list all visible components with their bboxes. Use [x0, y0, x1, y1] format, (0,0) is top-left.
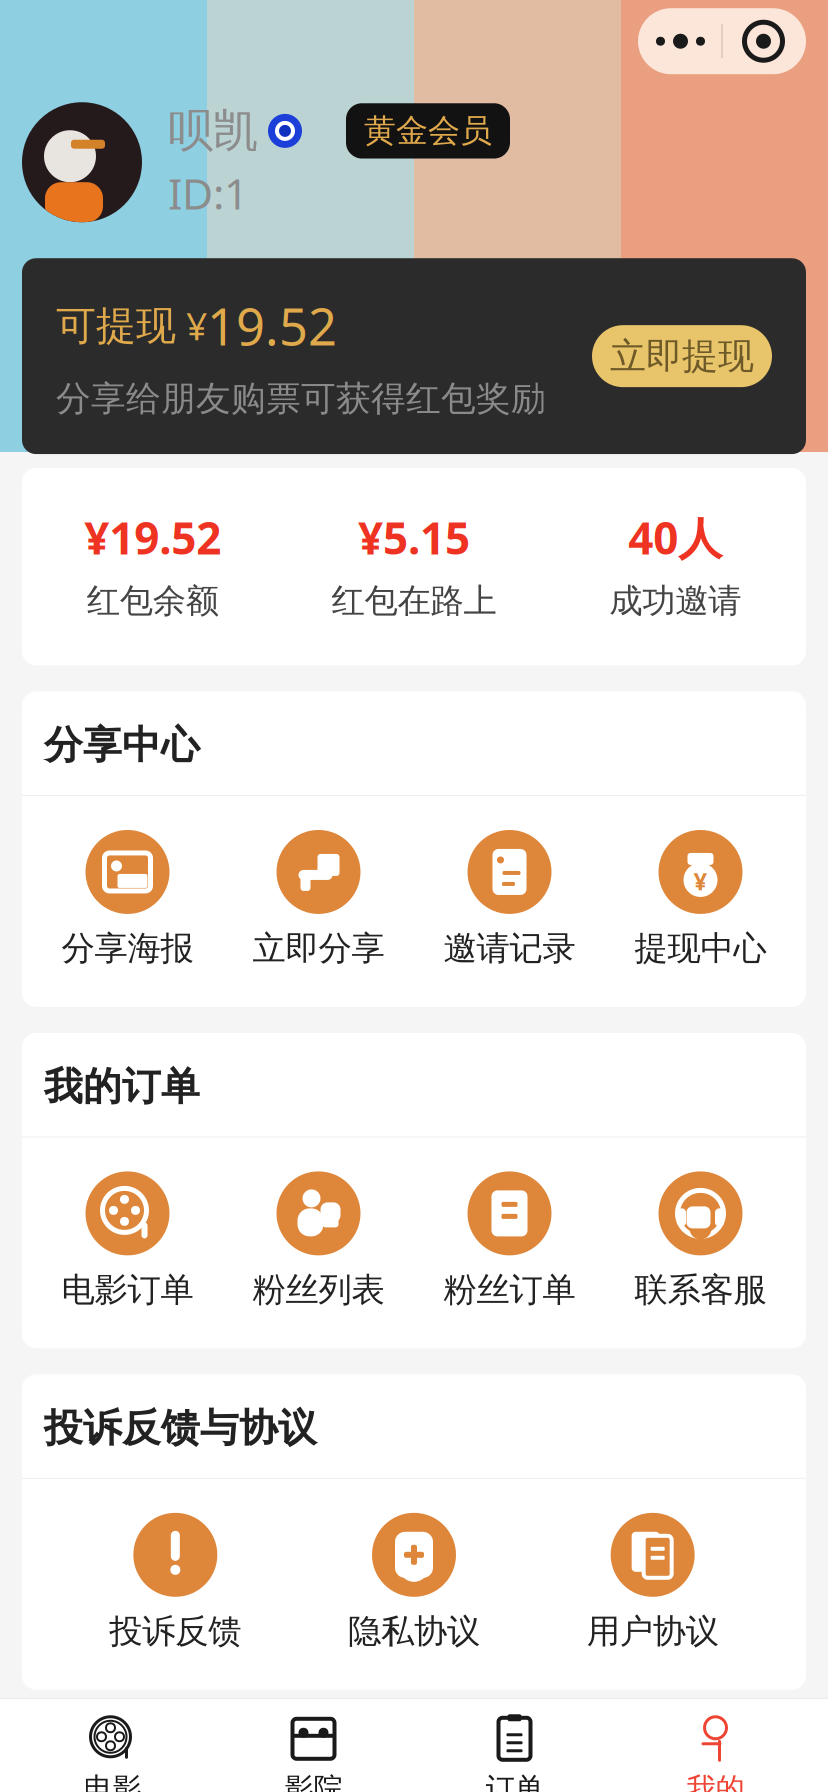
staticText: ID:1 — [168, 165, 248, 221]
staticText: 提现中心 — [634, 928, 766, 969]
staticText: 电影 — [83, 1771, 141, 1792]
button[interactable]: 联系客服 — [605, 1167, 796, 1314]
staticText: 可提现 — [56, 301, 176, 350]
button[interactable]: 订单 — [414, 1709, 615, 1792]
button[interactable]: 影院 — [213, 1709, 414, 1792]
staticText: 立即提现 — [610, 334, 754, 378]
staticText: ¥5.15 — [358, 508, 470, 566]
button[interactable]: More options — [638, 8, 806, 74]
staticText: 红包在路上 — [331, 580, 496, 621]
staticText: 用户协议 — [587, 1611, 719, 1652]
button[interactable]: 立即提现 — [592, 325, 772, 387]
button[interactable]: 隐私协议 — [295, 1509, 533, 1656]
staticText: 粉丝列表 — [252, 1269, 384, 1310]
button[interactable]: 电影订单 — [32, 1167, 223, 1314]
staticText: 分享给朋友购票可获得红包奖励 — [56, 377, 546, 420]
button[interactable]: 投诉反馈 — [56, 1509, 295, 1656]
staticText: 订单 — [485, 1771, 543, 1792]
staticText: 我的订单 — [44, 1063, 200, 1110]
staticText: 粉丝订单 — [443, 1269, 575, 1310]
staticText: 分享中心 — [44, 721, 200, 769]
staticText: 黄金会员 — [364, 111, 492, 150]
staticText: 影院 — [284, 1771, 342, 1792]
button[interactable]: 粉丝订单 — [414, 1167, 605, 1314]
staticText: 成功邀请 — [609, 580, 741, 621]
staticText: 隐私协议 — [348, 1611, 480, 1652]
button[interactable]: 立即分享 — [223, 826, 414, 973]
staticText: 投诉反馈与协议 — [44, 1404, 317, 1452]
button[interactable]: 我的 — [615, 1709, 816, 1792]
staticText: ¥ — [693, 865, 707, 897]
staticText: 19.52 — [207, 292, 337, 359]
staticText: 邀请记录 — [443, 928, 575, 969]
staticText: 分享海报 — [61, 928, 193, 969]
staticText: ¥ — [176, 301, 207, 351]
staticText: 立即分享 — [252, 928, 384, 969]
staticText: 40人 — [628, 508, 722, 566]
button[interactable]: 邀请记录 — [414, 826, 605, 973]
button[interactable]: ¥ — [605, 826, 796, 973]
button[interactable]: 粉丝列表 — [223, 1167, 414, 1314]
staticText: 呗凯 — [168, 103, 258, 159]
staticText: ¥19.52 — [84, 508, 221, 566]
button[interactable]: 分享海报 — [32, 826, 223, 973]
button[interactable]: 用户协议 — [533, 1509, 772, 1656]
button[interactable]: 电影 — [12, 1709, 213, 1792]
staticText: 红包余额 — [87, 580, 219, 621]
staticText: 投诉反馈 — [109, 1611, 241, 1652]
staticText: 联系客服 — [634, 1269, 766, 1310]
staticText: 电影订单 — [61, 1269, 193, 1310]
staticText: 我的 — [686, 1771, 744, 1792]
